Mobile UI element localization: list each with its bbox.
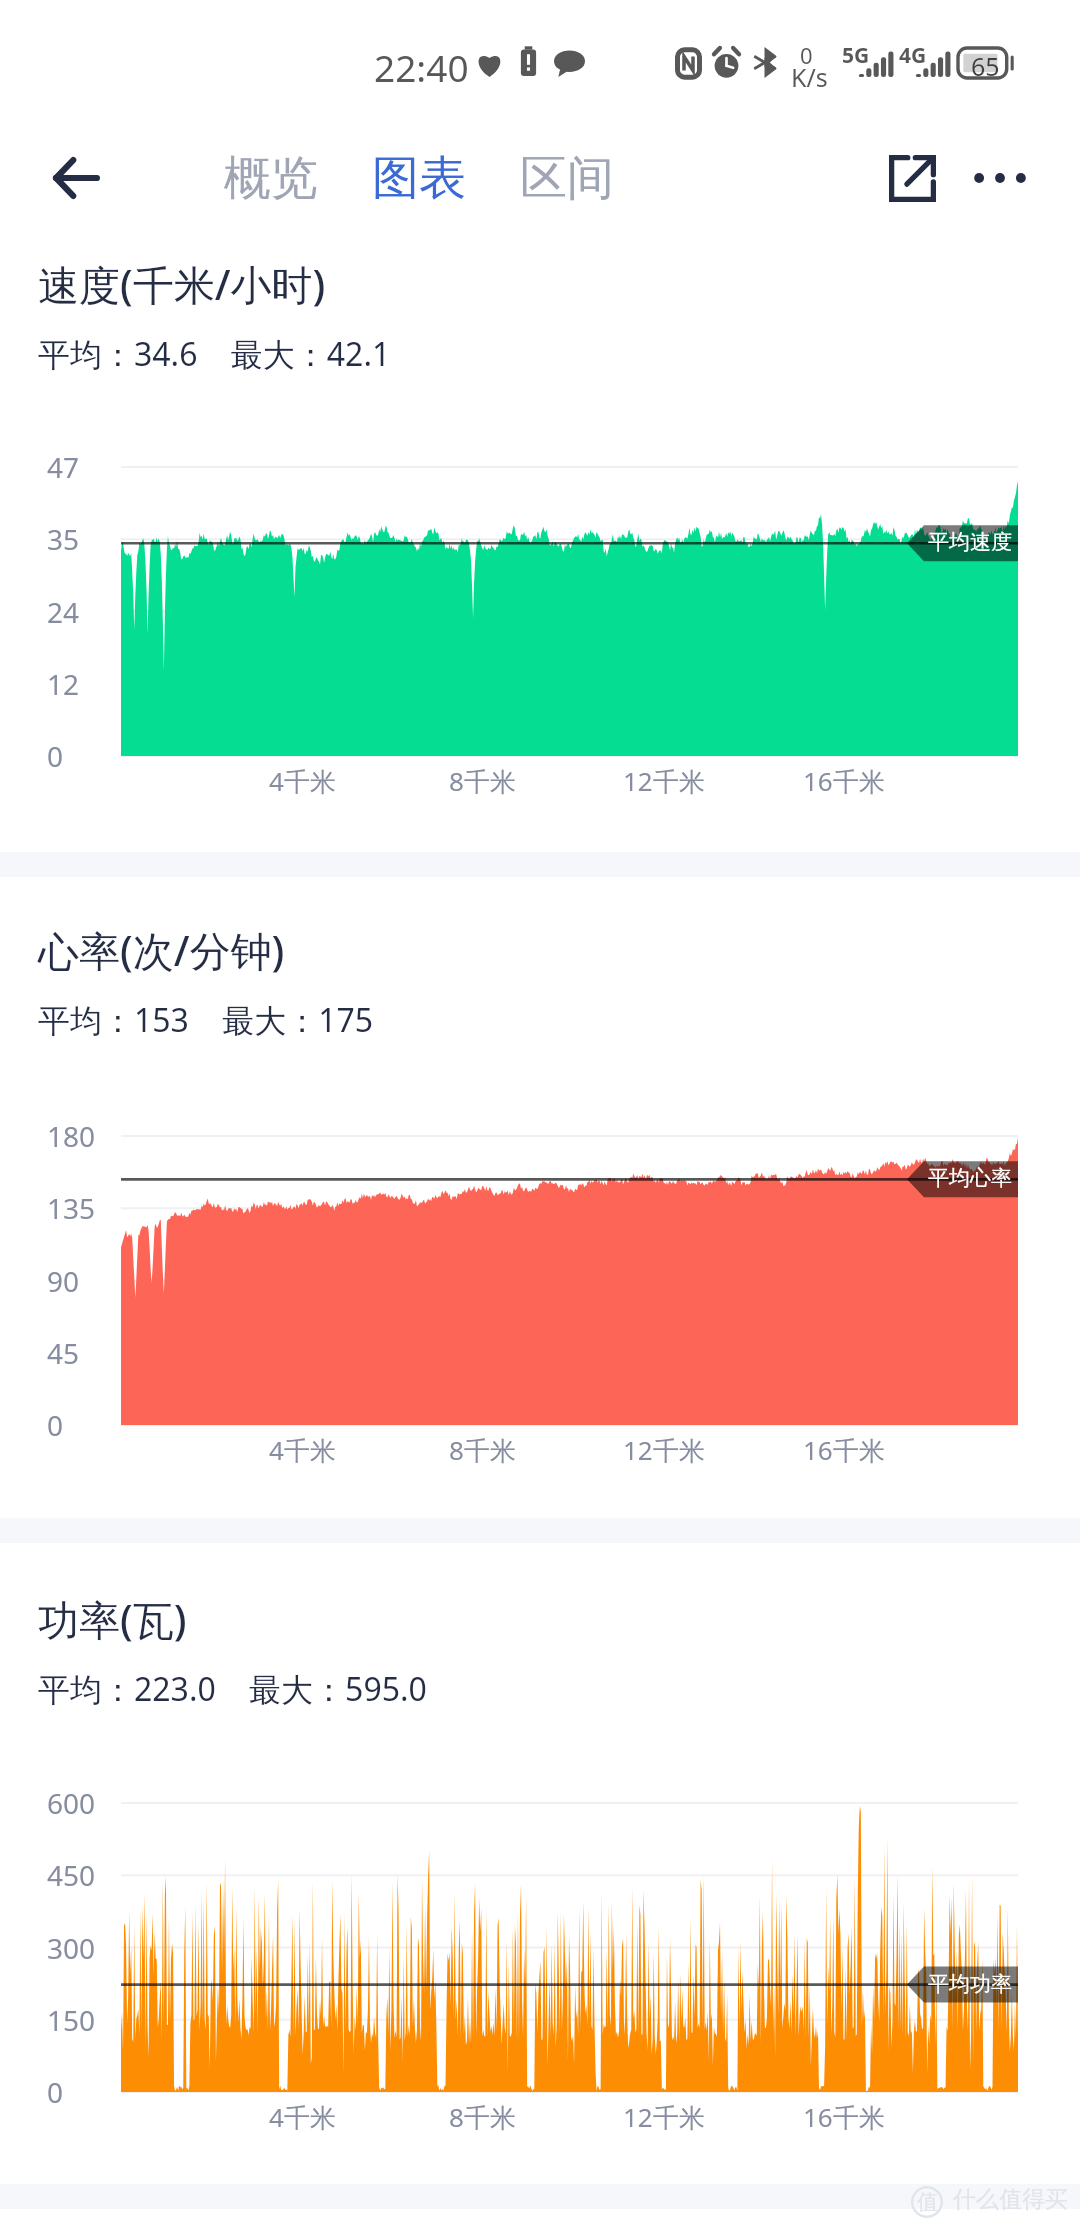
button[interactable]: Share <box>870 136 954 220</box>
staticText: 0 <box>47 737 64 775</box>
staticText: 35 <box>47 520 80 558</box>
staticText: 180 <box>47 1117 96 1155</box>
button[interactable]: 区间 <box>518 141 616 216</box>
staticText: 12千米 <box>623 1432 705 1468</box>
staticText: 0 <box>47 2073 64 2111</box>
button[interactable]: More options <box>960 138 1040 218</box>
staticText: 4千米 <box>269 2099 336 2135</box>
staticText: 12千米 <box>623 2099 705 2135</box>
button[interactable]: 图表 <box>370 141 468 216</box>
staticText: 8千米 <box>449 1432 516 1468</box>
button[interactable]: Back <box>36 138 116 218</box>
staticText: 平均功率 <box>928 1971 1012 1997</box>
staticText: 平均：223.0 最大：595.0 <box>38 1667 427 1711</box>
staticText: 150 <box>47 2001 96 2039</box>
staticText: 300 <box>47 1929 96 1967</box>
staticText: 功率(瓦) <box>38 1591 187 1647</box>
staticText: 12 <box>47 665 80 703</box>
staticText: 心率(次/分钟) <box>38 922 285 978</box>
staticText: 450 <box>47 1856 96 1894</box>
staticText: K/s <box>791 60 828 94</box>
staticText: 平均：153 最大：175 <box>38 998 374 1042</box>
staticText: 5G <box>842 41 870 70</box>
staticText: 22:40 <box>374 42 469 92</box>
staticText: 图表 <box>372 149 466 208</box>
staticText: 什么值得买 <box>953 2185 1068 2214</box>
staticText: 平均速度 <box>928 529 1012 555</box>
staticText: 平均心率 <box>928 1165 1012 1191</box>
staticText: 值 <box>917 2189 938 2215</box>
staticText: 16千米 <box>803 763 885 799</box>
staticText: 区间 <box>520 149 614 208</box>
staticText: 8千米 <box>449 763 516 799</box>
staticText: 速度(千米/小时) <box>38 256 326 312</box>
staticText: 90 <box>47 1262 80 1300</box>
staticText: 16千米 <box>803 1432 885 1468</box>
staticText: 4千米 <box>269 1432 336 1468</box>
staticText: 24 <box>47 593 80 631</box>
staticText: 0 <box>800 40 813 70</box>
staticText: 0 <box>47 1406 64 1444</box>
staticText: 4G <box>899 41 927 70</box>
staticText: 12千米 <box>623 763 705 799</box>
staticText: 135 <box>47 1189 96 1227</box>
staticText: 16千米 <box>803 2099 885 2135</box>
staticText: 600 <box>47 1784 96 1822</box>
staticText: 45 <box>47 1334 80 1372</box>
button[interactable]: 概览 <box>222 141 320 216</box>
staticText: 65 <box>971 49 1000 83</box>
staticText: 4千米 <box>269 763 336 799</box>
staticText: 概览 <box>224 149 318 208</box>
staticText: 8千米 <box>449 2099 516 2135</box>
staticText: 平均：34.6 最大：42.1 <box>38 332 391 376</box>
staticText: 47 <box>47 448 80 486</box>
